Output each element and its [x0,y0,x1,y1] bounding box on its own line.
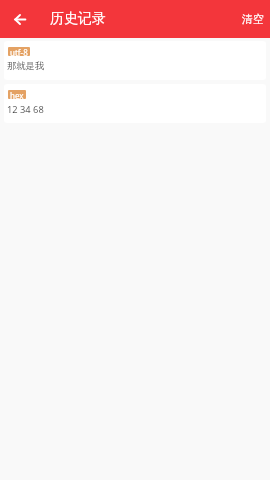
staticText: 清空 [242,12,264,26]
staticText: 历史记录 [50,10,106,28]
button[interactable]: Back [0,0,39,38]
staticText: utf-8 [10,47,28,56]
staticText: 那就是我 [7,60,45,72]
staticText: 12 34 68 [7,103,44,116]
button[interactable]: 清空 [236,0,270,38]
staticText: hex [10,90,24,99]
button[interactable]: utf-8 [4,41,266,80]
button[interactable]: hex [4,84,266,123]
